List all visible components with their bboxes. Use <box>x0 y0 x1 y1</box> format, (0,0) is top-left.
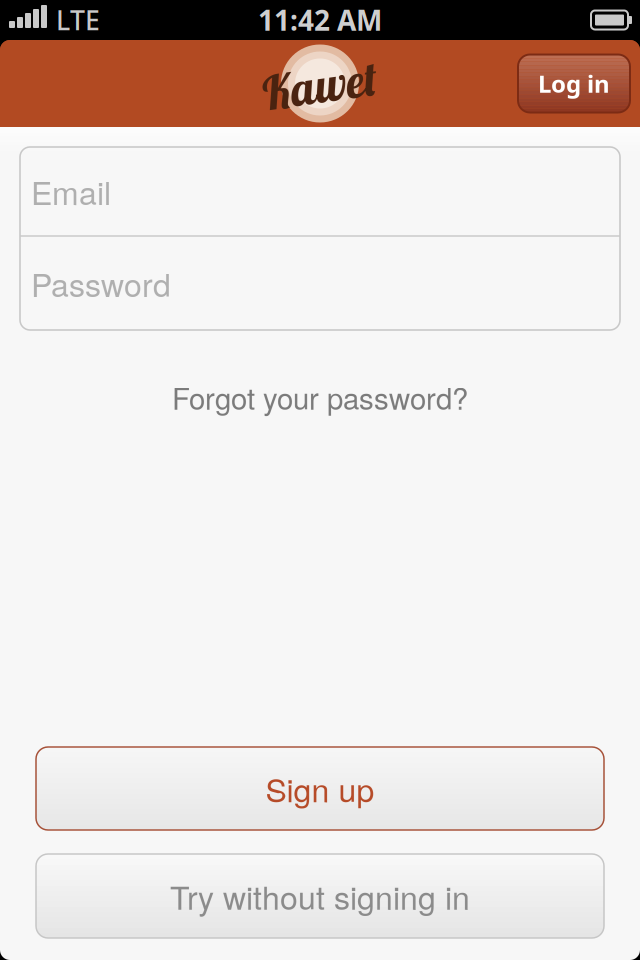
staticText: LTE <box>56 2 100 38</box>
button[interactable]: Try without signing in <box>36 854 604 938</box>
button[interactable]: Forgot your password? <box>172 376 468 418</box>
staticText: Log in <box>538 67 610 100</box>
staticText: Kawet <box>262 56 377 115</box>
staticText: Try without signing in <box>170 873 470 919</box>
staticText: Forgot your password? <box>172 376 468 418</box>
staticText: Password <box>31 260 171 306</box>
button[interactable]: Sign up <box>36 747 604 830</box>
button[interactable]: Password <box>20 237 620 330</box>
staticText: 11:42 AM <box>258 1 382 39</box>
button[interactable]: Email <box>20 147 620 235</box>
staticText: Email <box>31 168 111 214</box>
staticText: Sign up <box>265 766 374 811</box>
button[interactable]: Log in <box>518 54 630 112</box>
